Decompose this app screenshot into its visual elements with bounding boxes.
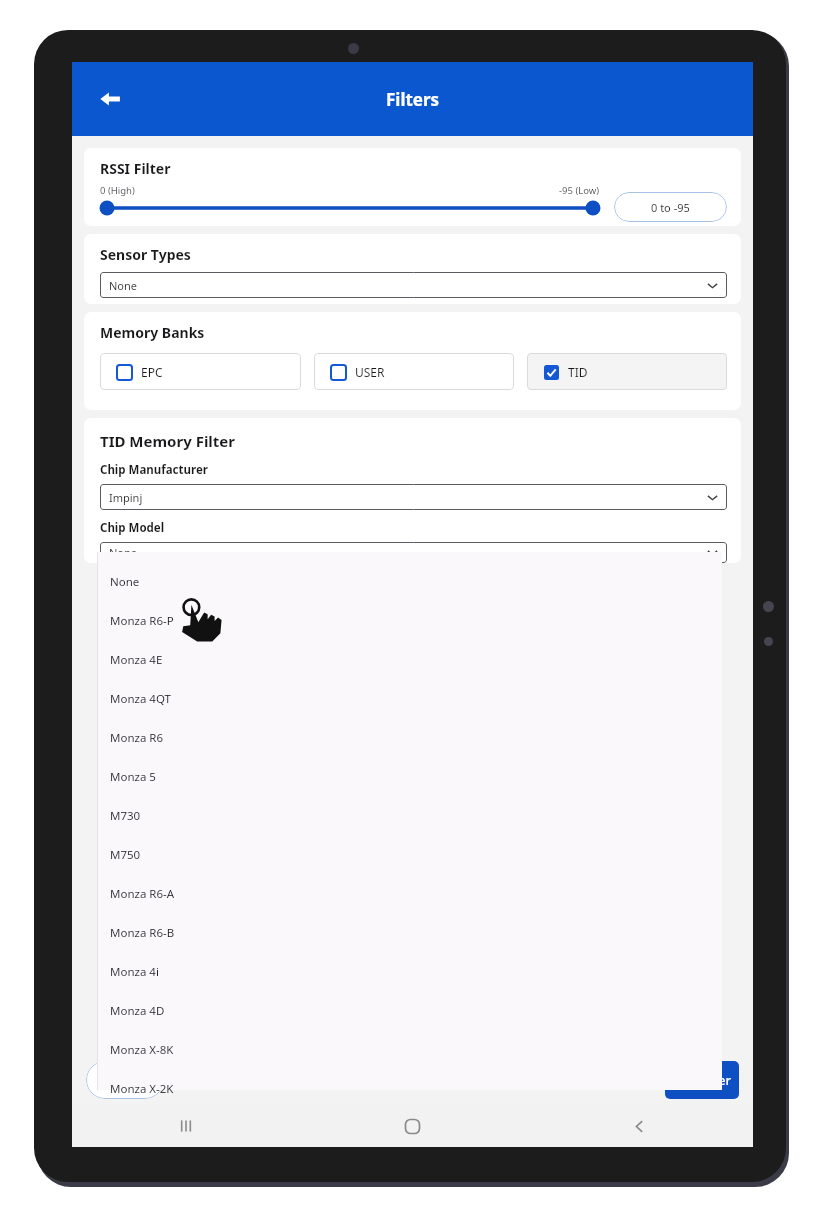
button[interactable]: TID xyxy=(527,353,727,390)
staticText: M750 xyxy=(110,847,141,863)
button[interactable]: Impinj xyxy=(100,484,727,510)
button[interactable]: M750 xyxy=(97,835,722,874)
staticText: 0 to -95 xyxy=(651,200,690,215)
staticText: USER xyxy=(355,364,385,380)
staticText: Monza R6-B xyxy=(110,925,175,941)
staticText: TID Memory Filter xyxy=(100,431,236,451)
staticText: Filters xyxy=(386,88,440,111)
button[interactable]: Monza 4E xyxy=(97,640,722,679)
staticText: Monza R6-A xyxy=(110,886,175,902)
button[interactable]: Monza X-8K xyxy=(97,1030,722,1069)
staticText: Sensor Types xyxy=(100,245,191,264)
button[interactable]: Reset xyxy=(86,1061,164,1099)
button[interactable]: RSSI range slider xyxy=(100,200,600,216)
button[interactable]: Monza R6-B xyxy=(97,913,722,952)
button[interactable]: Monza R6 xyxy=(97,718,722,757)
button[interactable]: EPC xyxy=(100,353,301,390)
staticText: None xyxy=(109,545,138,560)
button[interactable]: None xyxy=(100,542,727,563)
staticText: M730 xyxy=(110,808,141,824)
staticText: TID xyxy=(568,364,588,380)
staticText: Monza 4i xyxy=(110,964,159,980)
staticText: RSSI Filter xyxy=(100,159,171,178)
staticText: Chip Model xyxy=(100,520,165,536)
staticText: EPC xyxy=(141,364,163,380)
staticText: Monza X-8K xyxy=(110,1042,174,1058)
button[interactable]: Monza X-2K xyxy=(97,1069,722,1108)
button[interactable]: Monza 4i xyxy=(97,952,722,991)
staticText: Chip Manufacturer xyxy=(100,462,208,478)
staticText: Memory Banks xyxy=(100,323,205,342)
button[interactable]: USER xyxy=(314,353,514,390)
staticText: None xyxy=(110,574,140,590)
button[interactable]: Monza 4D xyxy=(97,991,722,1030)
staticText: -95 (Low) xyxy=(559,184,600,197)
staticText: Monza 4D xyxy=(110,1003,165,1019)
staticText: Monza 4E xyxy=(110,652,163,668)
button[interactable]: None xyxy=(97,562,722,601)
button[interactable]: Monza 5 xyxy=(97,757,722,796)
staticText: None xyxy=(109,278,138,293)
staticText: er xyxy=(718,1071,731,1089)
staticText: 0 (High) xyxy=(100,184,135,197)
staticText: Monza R6-P xyxy=(110,613,174,629)
button[interactable]: Back xyxy=(90,79,130,119)
button[interactable]: er xyxy=(665,1061,739,1099)
staticText: Impinj xyxy=(109,490,143,505)
staticText: Monza X-2K xyxy=(110,1081,174,1097)
staticText: Monza 4QT xyxy=(110,691,171,707)
button[interactable]: Monza 4QT xyxy=(97,679,722,718)
button[interactable]: M730 xyxy=(97,796,722,835)
button[interactable]: 0 to -95 xyxy=(614,192,727,222)
staticText: Monza 5 xyxy=(110,769,156,785)
button[interactable]: Monza R6-A xyxy=(97,874,722,913)
button[interactable]: Monza R6-P xyxy=(97,601,722,640)
staticText: Monza R6 xyxy=(110,730,164,746)
button[interactable]: None xyxy=(100,272,727,298)
